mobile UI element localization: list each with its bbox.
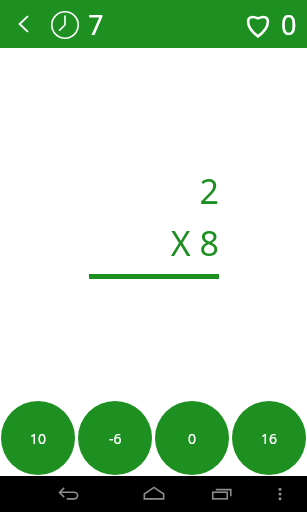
staticText: 7 bbox=[88, 6, 104, 43]
button[interactable]: Back bbox=[52, 477, 86, 511]
other: Time bbox=[48, 8, 82, 42]
other: Lives bbox=[241, 8, 275, 42]
staticText: X 8 bbox=[89, 220, 219, 266]
button[interactable]: Time bbox=[48, 6, 104, 43]
staticText: 10 bbox=[30, 429, 47, 448]
button[interactable]: Recent apps bbox=[205, 477, 239, 511]
button[interactable]: 0 bbox=[155, 401, 229, 475]
button[interactable]: 16 bbox=[232, 401, 306, 475]
button[interactable]: -6 bbox=[78, 401, 152, 475]
button[interactable]: Lives bbox=[241, 6, 297, 43]
staticText: -6 bbox=[109, 429, 122, 448]
staticText: 0 bbox=[188, 429, 197, 448]
button[interactable]: Home bbox=[137, 477, 171, 511]
button[interactable]: More options bbox=[265, 479, 295, 509]
staticText: 2 bbox=[89, 168, 219, 214]
button[interactable]: 10 bbox=[1, 401, 75, 475]
staticText: 16 bbox=[261, 429, 278, 448]
button[interactable]: Back bbox=[8, 8, 40, 40]
staticText: 0 bbox=[281, 6, 297, 43]
